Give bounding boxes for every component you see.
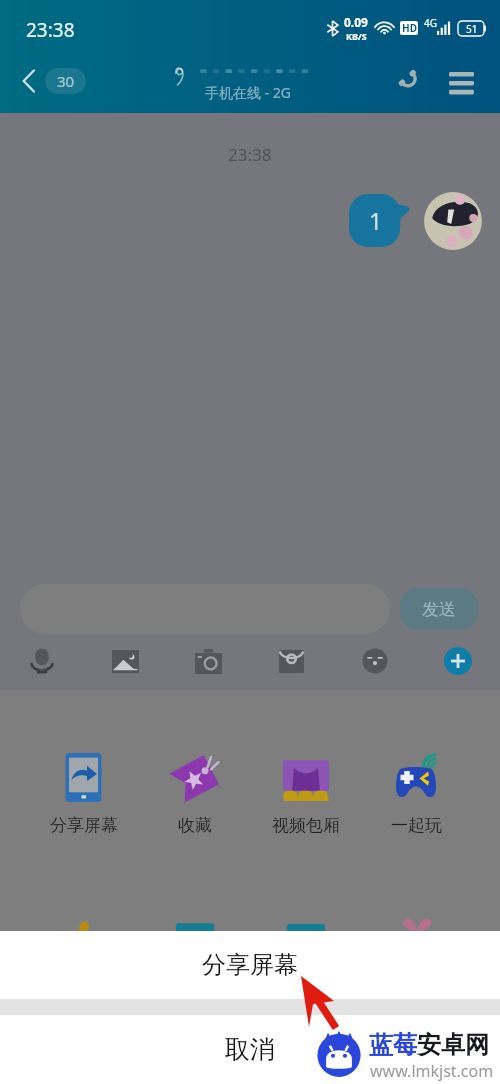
staticText: 分享屏幕 — [50, 815, 118, 836]
button[interactable]: Red packet — [279, 650, 304, 673]
staticText: 4G — [424, 16, 437, 30]
button[interactable]: 取消 — [0, 1015, 500, 1084]
staticText: 蓝莓 — [369, 1030, 417, 1060]
button[interactable]: 分享屏幕 — [0, 931, 500, 999]
button[interactable]: Call — [388, 62, 434, 102]
staticText: 23:38 — [26, 17, 75, 43]
staticText: 一起玩 — [391, 815, 442, 836]
button[interactable]: 发送 — [400, 588, 478, 630]
staticText: 安卓网 — [417, 1030, 489, 1060]
staticText: HD — [402, 21, 417, 35]
staticText: 手机在线 - 2G — [205, 83, 291, 102]
staticText: 收藏 — [178, 815, 212, 836]
button[interactable] — [361, 901, 472, 931]
staticText: 发送 — [422, 599, 456, 620]
button[interactable]: Back — [22, 62, 86, 100]
button[interactable]: Menu — [438, 62, 484, 102]
staticText: KB/S — [346, 30, 367, 42]
button[interactable] — [28, 901, 139, 931]
staticText: 1 — [369, 205, 383, 236]
button[interactable]: Emoji — [362, 648, 388, 674]
button[interactable] — [250, 901, 361, 931]
staticText: 分享屏幕 — [202, 950, 298, 980]
button[interactable]: 分享屏幕 — [28, 752, 139, 836]
button[interactable]: 一起玩 — [361, 752, 472, 836]
button[interactable]: Voice — [31, 648, 53, 674]
staticText: 0.09 — [344, 14, 368, 30]
staticText: 视频包厢 — [272, 815, 340, 836]
staticText: 取消 — [225, 1034, 275, 1065]
button[interactable]: 视频包厢 — [250, 752, 361, 836]
button[interactable]: Camera — [195, 649, 222, 674]
staticText: www.lmkjst.com — [370, 1060, 494, 1082]
button[interactable]: 收藏 — [139, 752, 250, 836]
staticText: 30 — [57, 71, 75, 91]
button[interactable] — [139, 901, 250, 931]
staticText: 23:38 — [228, 143, 272, 166]
staticText: 51 — [466, 22, 478, 36]
button[interactable]: Photo — [112, 650, 139, 673]
button[interactable]: More — [444, 647, 472, 675]
